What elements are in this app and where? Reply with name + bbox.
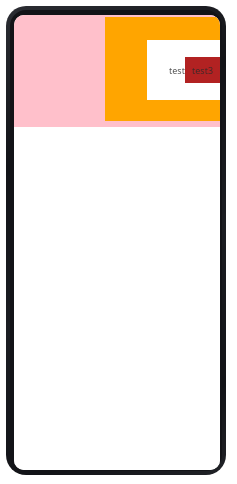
other: Content area <box>14 127 220 470</box>
button[interactable]: test <box>14 15 220 127</box>
staticText: test3 <box>192 64 214 76</box>
staticText: test <box>169 64 185 76</box>
button[interactable]: test <box>147 40 220 100</box>
button[interactable]: test3 <box>185 57 220 83</box>
button[interactable]: test <box>105 17 220 121</box>
